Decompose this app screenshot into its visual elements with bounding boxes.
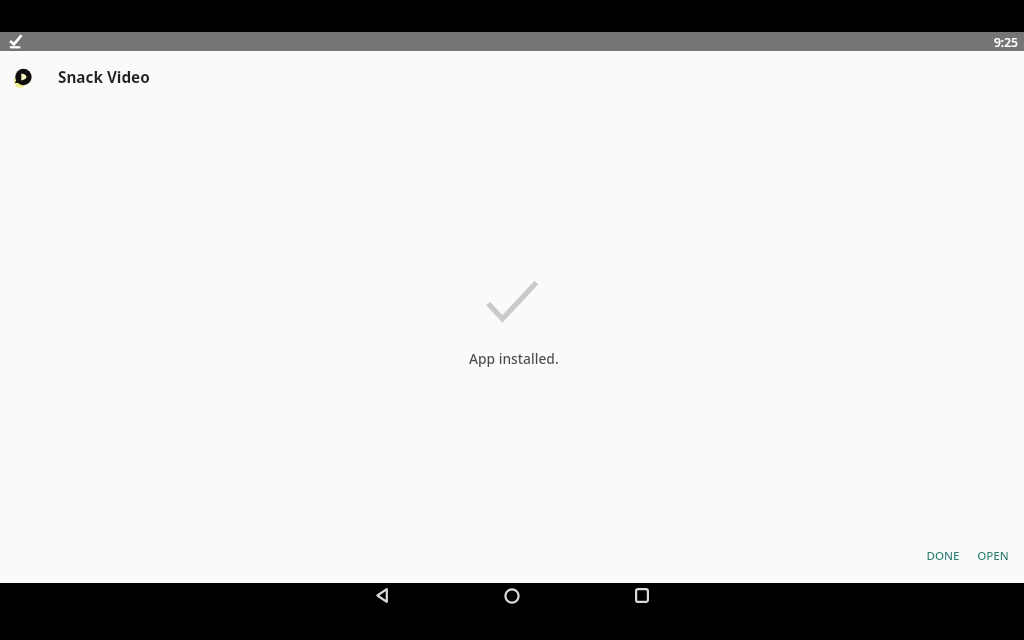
button[interactable]: DONE xyxy=(915,541,971,571)
staticText: Snack Video xyxy=(58,67,150,88)
staticText: 9:25 xyxy=(994,34,1018,50)
button[interactable]: OPEN xyxy=(966,541,1020,571)
button[interactable]: Back xyxy=(334,583,430,640)
button[interactable]: Home xyxy=(464,583,560,640)
button[interactable]: Recent apps xyxy=(594,583,690,640)
staticText: OPEN xyxy=(977,548,1009,564)
staticText: DONE xyxy=(926,548,960,564)
staticText: App installed. xyxy=(469,349,559,368)
